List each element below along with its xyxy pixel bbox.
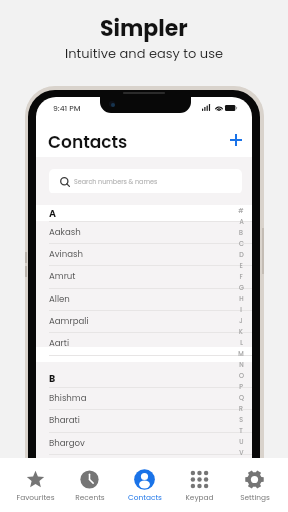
- button[interactable]: Bharati: [36, 409, 252, 431]
- staticText: U: [239, 437, 244, 446]
- staticText: P: [239, 382, 243, 391]
- button[interactable]: Aamrpali: [36, 310, 252, 332]
- staticText: D: [239, 250, 244, 259]
- staticText: Recents: [75, 492, 105, 502]
- button[interactable]: Recents: [62, 458, 117, 512]
- button[interactable]: Aakash: [36, 221, 252, 243]
- button[interactable]: Bhargov: [36, 432, 252, 454]
- staticText: Bhargov: [49, 437, 85, 449]
- staticText: S: [239, 415, 243, 424]
- button[interactable]: Allen: [36, 288, 252, 310]
- staticText: A: [239, 217, 244, 226]
- staticText: Settings: [240, 492, 270, 502]
- staticText: Amrut: [49, 270, 76, 282]
- staticText: B: [239, 228, 243, 237]
- staticText: R: [239, 404, 243, 413]
- staticText: M: [238, 349, 244, 358]
- button[interactable]: Search numbers & names: [49, 169, 242, 194]
- staticText: Aakash: [49, 226, 81, 238]
- staticText: V: [239, 448, 244, 457]
- staticText: J: [239, 316, 243, 325]
- staticText: Simpler: [100, 13, 188, 44]
- staticText: Bhishma: [49, 392, 87, 404]
- staticText: Avinash: [49, 248, 84, 260]
- staticText: F: [239, 272, 243, 281]
- button[interactable]: Add contact: [224, 128, 248, 152]
- staticText: I: [240, 305, 242, 314]
- button[interactable]: Avinash: [36, 243, 252, 265]
- staticText: Intuitive and easy to use: [65, 44, 224, 62]
- staticText: O: [239, 371, 244, 380]
- staticText: Aarti: [49, 337, 70, 349]
- button[interactable]: Keypad: [172, 458, 227, 512]
- staticText: E: [239, 261, 243, 270]
- button[interactable]: Settings: [227, 458, 282, 512]
- button[interactable]: Contacts: [117, 458, 172, 512]
- staticText: Contacts: [128, 492, 162, 502]
- staticText: 9:41 PM: [53, 103, 81, 114]
- staticText: Bharati: [49, 414, 80, 426]
- button[interactable]: Bhishma: [36, 387, 252, 409]
- staticText: L: [240, 338, 243, 347]
- staticText: H: [239, 294, 244, 303]
- button[interactable]: Favourites: [8, 458, 62, 512]
- staticText: B: [49, 372, 56, 385]
- staticText: A: [49, 207, 57, 220]
- staticText: Search numbers & names: [74, 177, 158, 186]
- staticText: G: [239, 283, 244, 292]
- staticText: #: [238, 206, 244, 215]
- button[interactable]: Aarti: [36, 332, 252, 354]
- staticText: T: [239, 426, 243, 435]
- staticText: N: [239, 360, 244, 369]
- staticText: Keypad: [185, 492, 214, 502]
- staticText: Aamrpali: [49, 315, 89, 327]
- staticText: Q: [239, 393, 244, 402]
- staticText: Allen: [49, 293, 70, 305]
- staticText: Contacts: [48, 130, 128, 154]
- staticText: K: [239, 327, 243, 336]
- button[interactable]: Amrut: [36, 265, 252, 287]
- staticText: C: [239, 239, 244, 248]
- staticText: Favourites: [16, 492, 55, 502]
